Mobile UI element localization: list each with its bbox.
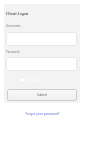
staticText: Client Logon (6, 11, 29, 16)
button[interactable]: Username (6, 32, 77, 46)
button[interactable]: Password (6, 57, 77, 71)
staticText: Submit (37, 93, 48, 97)
staticText: Forgot your password? (25, 112, 60, 116)
staticText: Username: (6, 24, 21, 28)
button[interactable]: Remember me (19, 77, 25, 83)
staticText: Password: (6, 50, 20, 54)
button[interactable]: Forgot your password? (0, 110, 85, 117)
button[interactable]: Submit (7, 89, 77, 101)
